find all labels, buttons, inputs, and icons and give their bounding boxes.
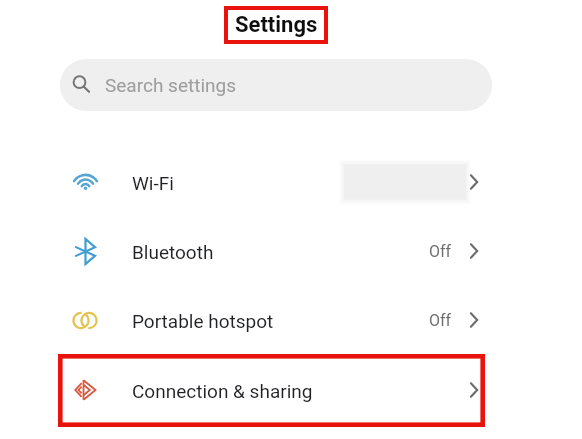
- staticText: Wi-Fi: [132, 172, 174, 194]
- button[interactable]: Search settings: [60, 59, 492, 111]
- staticText: Off: [429, 242, 452, 261]
- button[interactable]: Connection & sharing: [40, 355, 500, 424]
- staticText: Connection & sharing: [132, 380, 313, 402]
- staticText: Off: [429, 311, 452, 330]
- button[interactable]: Wi-Fi: [40, 147, 500, 216]
- staticText: Search settings: [105, 74, 236, 96]
- staticText: Settings: [235, 12, 318, 38]
- button[interactable]: Bluetooth: [40, 216, 500, 285]
- staticText: Portable hotspot: [132, 310, 274, 332]
- button[interactable]: Portable hotspot: [40, 285, 500, 354]
- staticText: Bluetooth: [132, 241, 214, 263]
